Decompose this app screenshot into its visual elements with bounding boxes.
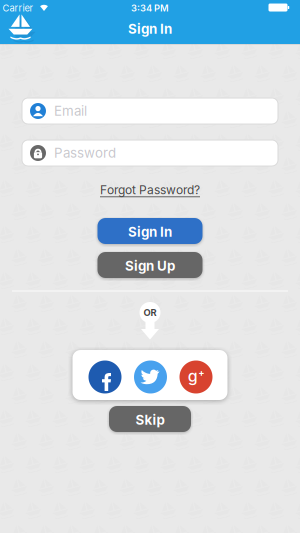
button[interactable]: Forgot Password? xyxy=(100,183,200,197)
staticText: OR xyxy=(143,307,156,318)
button[interactable]: Email xyxy=(22,98,278,124)
button[interactable]: Sign In xyxy=(97,218,202,244)
staticText: Sign Up xyxy=(125,258,175,274)
button[interactable]: Skip xyxy=(109,406,191,432)
staticText: Email xyxy=(54,103,87,119)
staticText: + xyxy=(198,367,204,378)
button[interactable]: Sign in with Twitter xyxy=(134,360,167,393)
staticText: Skip xyxy=(135,412,164,428)
staticText: g xyxy=(188,367,198,385)
staticText: Carrier xyxy=(2,2,33,13)
button[interactable]: Password xyxy=(22,140,278,166)
button[interactable]: Sign in with Facebook xyxy=(88,360,121,393)
staticText: Forgot Password? xyxy=(100,183,200,197)
staticText: Sign In xyxy=(128,224,172,240)
button[interactable]: Sign in with Google xyxy=(179,360,212,393)
button[interactable]: Sign Up xyxy=(97,252,202,278)
staticText: 3:34 PM xyxy=(131,2,169,13)
staticText: Sign In xyxy=(128,21,172,37)
staticText: Password xyxy=(54,145,116,161)
